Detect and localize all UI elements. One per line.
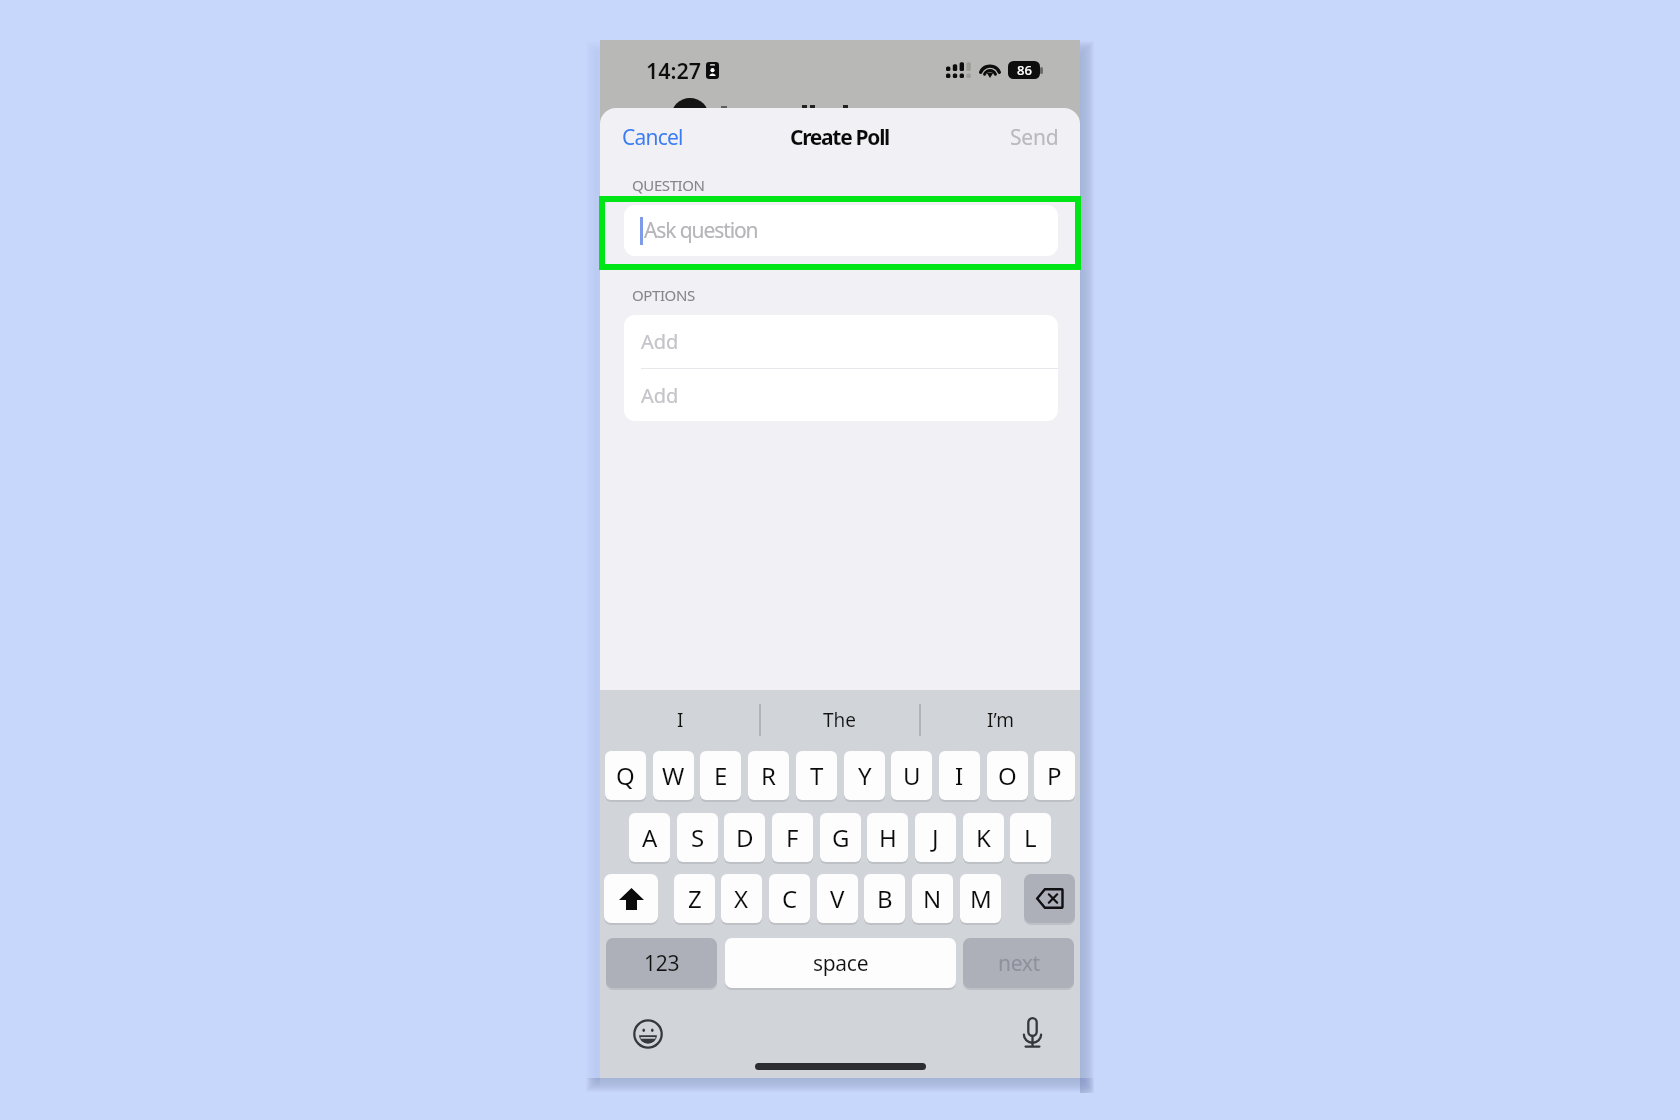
staticText: N <box>923 882 942 915</box>
staticText: K <box>976 821 991 854</box>
staticText: The <box>823 707 857 733</box>
button[interactable]: T <box>796 751 837 800</box>
button[interactable]: space <box>725 938 956 988</box>
staticText: C <box>782 882 798 915</box>
staticText: Send <box>1010 123 1059 152</box>
staticText: X <box>734 882 749 915</box>
button[interactable]: Ask question <box>624 205 1058 256</box>
staticText: M <box>970 882 992 915</box>
staticText: S <box>691 821 705 854</box>
button[interactable]: W <box>653 751 694 800</box>
staticText: OPTIONS <box>632 285 695 305</box>
staticText: I’m <box>987 707 1014 733</box>
staticText: space <box>813 949 869 978</box>
button[interactable]: next <box>963 938 1074 988</box>
staticText: O <box>998 759 1017 792</box>
staticText: D <box>736 821 754 854</box>
staticText: QUESTION <box>632 175 705 195</box>
button[interactable]: I <box>939 751 980 800</box>
staticText: Cancel <box>622 123 683 152</box>
staticText: Y <box>858 759 872 792</box>
button[interactable]: Dictation <box>1008 1009 1056 1057</box>
staticText: Add <box>641 382 679 409</box>
staticText: B <box>877 882 893 915</box>
button[interactable]: I’m <box>920 690 1080 749</box>
button[interactable]: F <box>772 813 813 862</box>
staticText: L <box>1024 821 1037 854</box>
staticText: I <box>955 759 964 792</box>
staticText: E <box>714 759 728 792</box>
button[interactable]: 123 <box>606 938 717 988</box>
button[interactable]: K <box>963 813 1004 862</box>
staticText: I <box>677 707 684 733</box>
staticText: Z <box>688 882 702 915</box>
button[interactable]: R <box>748 751 789 800</box>
staticText: F <box>786 821 799 854</box>
button[interactable]: Add <box>624 369 1058 421</box>
button[interactable]: A <box>629 813 670 862</box>
staticText: Q <box>616 759 635 792</box>
button[interactable]: E <box>700 751 741 800</box>
button[interactable]: P <box>1034 751 1075 800</box>
button[interactable]: O <box>987 751 1028 800</box>
button[interactable]: S <box>677 813 718 862</box>
button[interactable]: Backspace <box>1024 874 1075 923</box>
staticText: Add <box>641 328 679 355</box>
button[interactable]: L <box>1010 813 1051 862</box>
staticText: P <box>1047 759 1062 792</box>
button[interactable]: Emoji keyboard <box>624 1010 672 1058</box>
staticText: G <box>832 821 850 854</box>
button[interactable]: Z <box>674 874 715 923</box>
staticText: 14:27 <box>646 56 702 85</box>
button[interactable]: J <box>915 813 956 862</box>
button[interactable]: Y <box>844 751 885 800</box>
button[interactable]: Shift <box>604 874 658 923</box>
button[interactable]: N <box>912 874 953 923</box>
staticText: H <box>879 821 897 854</box>
button[interactable]: Cancel <box>609 113 696 162</box>
staticText: U <box>903 759 921 792</box>
staticText: J <box>932 821 939 854</box>
staticText: 123 <box>644 949 680 978</box>
staticText: Create Poll <box>790 123 890 152</box>
staticText: Ask question <box>644 216 758 245</box>
staticText: W <box>662 759 685 792</box>
button[interactable]: H <box>867 813 908 862</box>
button[interactable]: Add <box>624 315 1058 368</box>
button[interactable]: U <box>891 751 932 800</box>
staticText: 86 <box>1017 61 1032 79</box>
button[interactable]: X <box>721 874 762 923</box>
staticText: next <box>998 949 1040 978</box>
staticText: T <box>810 759 824 792</box>
button[interactable]: V <box>817 874 858 923</box>
button[interactable]: C <box>769 874 810 923</box>
button[interactable]: M <box>960 874 1001 923</box>
button[interactable]: Q <box>605 751 646 800</box>
button[interactable]: I <box>600 690 760 749</box>
staticText: V <box>830 882 845 915</box>
button[interactable]: The <box>760 690 920 749</box>
button[interactable]: Send <box>997 113 1072 162</box>
staticText: R <box>761 759 776 792</box>
staticText: A <box>642 821 658 854</box>
button[interactable]: D <box>724 813 765 862</box>
button[interactable]: G <box>820 813 861 862</box>
button[interactable]: B <box>864 874 905 923</box>
